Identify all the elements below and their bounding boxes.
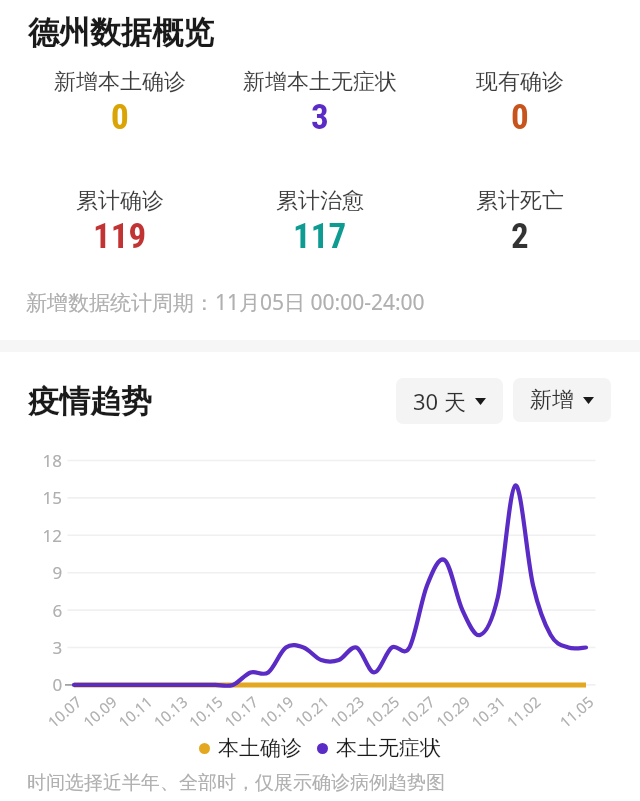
staticText: 117 <box>293 216 347 257</box>
staticText: 新增本土确诊 <box>54 68 186 96</box>
staticText: 0 <box>111 97 129 138</box>
staticText: 新增 <box>530 386 574 414</box>
button[interactable]: 累计确诊 <box>20 187 220 257</box>
staticText: 现有确诊 <box>476 68 564 96</box>
staticText: 累计治愈 <box>276 187 364 215</box>
staticText: 119 <box>93 216 147 257</box>
button[interactable]: 本土无症状 <box>317 735 441 761</box>
button[interactable]: 本土确诊 <box>199 735 302 761</box>
staticText: 本土无症状 <box>336 735 441 761</box>
button[interactable]: 新增本土无症状 <box>220 68 420 138</box>
staticText: 新增数据统计周期：11月05日 00:00-24:00 <box>26 288 425 317</box>
staticText: 德州数据概览 <box>28 13 214 52</box>
button[interactable]: 30 天 <box>396 378 503 424</box>
staticText: 3 <box>311 97 329 138</box>
staticText: 疫情趋势 <box>28 382 152 421</box>
staticText: 0 <box>511 97 529 138</box>
button[interactable]: 新增 <box>513 378 611 422</box>
staticText: 新增本土无症状 <box>243 68 397 96</box>
staticText: 2 <box>511 216 529 257</box>
button[interactable]: 累计治愈 <box>220 187 420 257</box>
staticText: 时间选择近半年、全部时，仅展示确诊病例趋势图 <box>27 771 445 795</box>
staticText: 30 天 <box>413 386 466 416</box>
button[interactable]: 现有确诊 <box>420 68 620 138</box>
button[interactable]: 新增本土确诊 <box>20 68 220 138</box>
button[interactable]: 累计死亡 <box>420 187 620 257</box>
staticText: 累计确诊 <box>76 187 164 215</box>
staticText: 累计死亡 <box>476 187 564 215</box>
staticText: 本土确诊 <box>218 735 302 761</box>
